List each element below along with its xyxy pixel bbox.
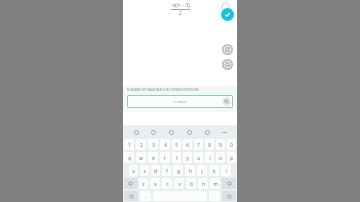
staticText: b xyxy=(190,181,193,187)
staticText: 2 xyxy=(179,10,182,17)
staticText: s xyxy=(143,168,146,174)
staticText: . xyxy=(214,193,216,199)
staticText: w xyxy=(139,155,143,161)
staticText: x xyxy=(154,181,157,187)
button[interactable]: p xyxy=(227,152,236,163)
staticText: y xyxy=(186,155,189,161)
staticText: o xyxy=(219,155,222,161)
staticText: 7 xyxy=(197,142,200,148)
button[interactable]: Shift xyxy=(124,178,137,189)
staticText: 9 xyxy=(219,142,222,148)
button[interactable]: d xyxy=(151,165,160,176)
button[interactable]: t xyxy=(172,152,181,163)
staticText: q xyxy=(128,155,131,161)
staticText: t xyxy=(176,155,178,161)
staticText: r xyxy=(164,155,166,161)
staticText: NUMBER OF DIAGONALS IN CONVEX POLYGON xyxy=(127,88,233,92)
button[interactable]: v xyxy=(174,178,184,189)
staticText: 1 xyxy=(128,142,131,148)
button[interactable]: c xyxy=(162,178,172,189)
button[interactable]: 6 xyxy=(183,139,192,150)
button[interactable]: k xyxy=(209,165,219,176)
button[interactable]: 0 xyxy=(227,139,236,150)
staticText: l xyxy=(225,168,227,174)
button[interactable]: o xyxy=(216,152,225,163)
staticText: n value xyxy=(173,99,187,104)
button[interactable]: , xyxy=(140,191,151,201)
button[interactable]: GIF xyxy=(148,127,158,137)
staticText: u xyxy=(197,155,200,161)
button[interactable]: l xyxy=(221,165,231,176)
button[interactable]: q xyxy=(124,152,134,163)
button[interactable]: b xyxy=(186,178,196,189)
staticText: n(n − 3) xyxy=(172,2,190,9)
staticText: 8 xyxy=(208,142,211,148)
staticText: m xyxy=(213,181,218,187)
button[interactable]: 2 xyxy=(136,139,146,150)
staticText: a xyxy=(132,168,135,174)
button[interactable]: Search xyxy=(184,127,194,137)
staticText: j xyxy=(201,168,203,174)
button[interactable]: 5 xyxy=(172,139,181,150)
button[interactable]: . xyxy=(209,191,220,201)
button[interactable]: Emoji xyxy=(131,127,141,137)
staticText: 6 xyxy=(186,142,189,148)
button[interactable]: z xyxy=(139,178,148,189)
button[interactable]: Translate xyxy=(202,127,212,137)
button[interactable]: Backspace xyxy=(222,178,236,189)
button[interactable]: Enter xyxy=(222,191,236,201)
button[interactable]: 3 xyxy=(148,139,158,150)
button[interactable]: n xyxy=(198,178,208,189)
staticText: e xyxy=(152,155,155,161)
button[interactable]: 7 xyxy=(194,139,203,150)
button[interactable]: m xyxy=(210,178,220,189)
staticText: , xyxy=(145,193,147,199)
button[interactable]: x xyxy=(150,178,160,189)
button[interactable]: j xyxy=(197,165,207,176)
staticText: d xyxy=(154,168,157,174)
staticText: 0 xyxy=(230,142,233,148)
button[interactable]: Symbols xyxy=(124,191,138,201)
staticText: z xyxy=(142,181,145,187)
staticText: 5 xyxy=(175,142,178,148)
button[interactable]: r xyxy=(160,152,170,163)
button[interactable]: i xyxy=(205,152,214,163)
staticText: k xyxy=(213,168,216,174)
button[interactable]: h xyxy=(185,165,195,176)
button[interactable]: Previous question xyxy=(222,44,233,55)
staticText: 2 xyxy=(140,142,143,148)
staticText: p xyxy=(230,155,233,161)
staticText: 4 xyxy=(164,142,167,148)
button[interactable]: e xyxy=(148,152,158,163)
button[interactable]: Next question xyxy=(222,59,233,70)
button[interactable]: More options xyxy=(219,127,229,137)
button[interactable]: 9 xyxy=(216,139,225,150)
button[interactable]: g xyxy=(173,165,183,176)
button[interactable]: w xyxy=(136,152,146,163)
button[interactable]: 8 xyxy=(205,139,214,150)
staticText: f xyxy=(166,168,168,174)
button[interactable]: s xyxy=(140,165,149,176)
button[interactable]: 4 xyxy=(160,139,170,150)
button[interactable]: n value xyxy=(127,95,233,108)
button[interactable]: Sticker xyxy=(166,127,176,137)
button[interactable]: Confirm answer xyxy=(221,8,234,21)
staticText: h xyxy=(189,168,192,174)
button[interactable]: y xyxy=(183,152,192,163)
button[interactable]: f xyxy=(162,165,171,176)
button[interactable]: Search xyxy=(222,97,231,106)
staticText: i xyxy=(209,155,211,161)
staticText: v xyxy=(178,181,181,187)
button[interactable]: a xyxy=(129,165,138,176)
button[interactable]: u xyxy=(194,152,203,163)
staticText: 3 xyxy=(152,142,155,148)
button[interactable]: 1 xyxy=(124,139,134,150)
staticText: c xyxy=(166,181,169,187)
staticText: g xyxy=(177,168,180,174)
staticText: n xyxy=(202,181,205,187)
